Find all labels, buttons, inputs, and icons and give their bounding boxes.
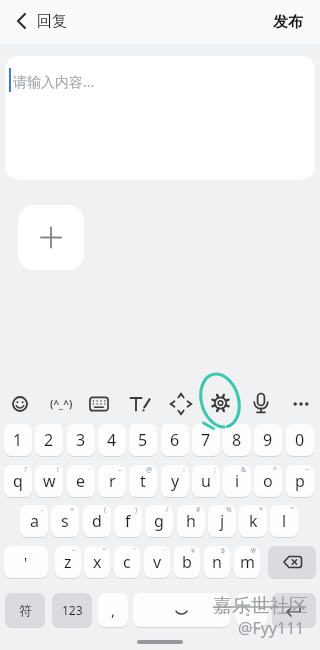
staticText: 6 [170,429,180,451]
staticText: 嘉乐世社区 [213,594,308,618]
button[interactable]: 9 [254,424,282,456]
button[interactable]: w [35,465,63,497]
staticText: @ [146,465,153,475]
button[interactable] [81,386,117,422]
button[interactable]: 1 [4,424,32,456]
button[interactable]: k [239,505,267,537]
staticText: 5 [138,429,148,451]
button[interactable]: 3 [67,424,95,456]
staticText: g [154,510,164,532]
button[interactable] [18,205,84,270]
button[interactable]: 发布 [273,13,303,32]
staticText: ! [57,465,59,475]
button[interactable]: 4 [98,424,126,456]
staticText: 7 [201,429,211,451]
button[interactable] [202,385,239,422]
button[interactable]: r [98,465,126,497]
staticText: ) [135,505,138,515]
staticText: e [76,470,86,492]
staticText: s [61,510,69,532]
staticText: m [240,551,255,573]
staticText: 请输入内容... [13,72,95,91]
button[interactable]: s [51,505,79,537]
button[interactable] [272,593,316,627]
staticText: " [291,505,294,515]
staticText: · [164,546,166,556]
staticText: · [89,465,91,475]
staticText: u [201,470,211,492]
button[interactable] [163,386,199,422]
button[interactable] [122,386,158,422]
staticText: ₩ [251,546,256,556]
button[interactable]: 7 [192,424,220,456]
staticText: i [235,470,240,492]
staticText: ^ [273,465,278,475]
staticText: # [196,505,201,515]
staticText: q [13,470,23,492]
button[interactable]: l [270,505,298,537]
staticText: ? [24,465,28,475]
button[interactable]: 2 [35,424,63,456]
button[interactable]: j [208,505,236,537]
staticText: r [109,470,116,492]
button[interactable]: v [144,546,170,578]
button[interactable]: e [67,465,95,497]
staticText: ~ [72,546,77,556]
button[interactable]: u [192,465,220,497]
staticText: 8 [232,429,242,451]
button[interactable] [6,6,36,36]
staticText: n [212,551,222,573]
button[interactable]: 5 [129,424,157,456]
button[interactable]: 8 [223,424,251,456]
button[interactable]: c [114,546,140,578]
button[interactable]: o [254,465,282,497]
staticText: w [43,470,56,492]
button[interactable] [243,386,279,422]
button[interactable]: z [55,546,81,578]
button[interactable]: a [20,505,48,537]
button[interactable]: 123 [52,593,92,627]
button[interactable] [268,546,316,578]
button[interactable] [133,593,230,627]
button[interactable]: d [83,505,111,537]
staticText: ~ [305,465,310,475]
button[interactable]: ' [4,546,48,578]
button[interactable]: g [145,505,173,537]
staticText: @Fyy111 [238,617,305,639]
staticText: 4 [107,429,117,451]
staticText: ( [104,505,107,515]
staticText: 回复 [37,12,67,31]
staticText: $ [221,546,226,556]
button[interactable]: y [161,465,189,497]
button[interactable]: n [204,546,230,578]
button[interactable]: , [98,593,128,627]
button[interactable] [283,386,319,422]
staticText: – [118,465,122,475]
button[interactable]: h [177,505,205,537]
button[interactable] [2,386,38,422]
staticText: 0 [295,429,305,451]
staticText: a [30,510,39,532]
button[interactable]: 符 [5,593,45,627]
staticText: 符 [19,602,32,618]
button[interactable]: 请输入内容... [5,56,315,180]
button[interactable]: i [223,465,251,497]
button[interactable]: 6 [161,424,189,456]
button[interactable]: x [84,546,110,578]
staticText: 1 [13,429,23,451]
button[interactable]: t [129,465,157,497]
button[interactable]: 。 [236,593,267,627]
button[interactable]: (^_^) [43,386,79,422]
button[interactable]: m [234,546,260,578]
staticText: - [41,505,44,515]
button[interactable]: p [286,465,314,497]
button[interactable]: b [174,546,200,578]
button[interactable]: 0 [286,424,314,456]
staticText: / [166,505,169,515]
staticText: l [282,510,287,532]
button[interactable]: f [114,505,142,537]
staticText: * [259,505,263,515]
button[interactable]: q [4,465,32,497]
staticText: o [263,470,273,492]
staticText: x [93,551,102,573]
